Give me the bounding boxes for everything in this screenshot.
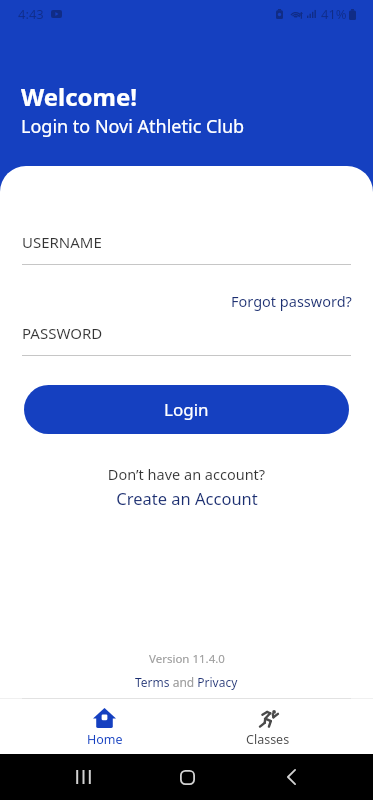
button[interactable]: Create an Account <box>116 487 258 509</box>
staticText: PASSWORD <box>22 323 103 343</box>
staticText: 4:43 <box>18 5 44 23</box>
staticText: Login <box>164 398 209 421</box>
staticText: 41% <box>321 5 347 23</box>
staticText: Welcome! <box>21 80 138 113</box>
button[interactable]: Recent apps <box>60 755 104 799</box>
staticText: Forgot password? <box>231 291 352 311</box>
staticText: Don’t have an account? <box>0 464 373 484</box>
button[interactable]: USERNAME <box>22 232 351 265</box>
button[interactable]: Home <box>23 699 186 754</box>
staticText: Version 11.4.0 <box>149 651 225 667</box>
button[interactable]: Login <box>24 385 349 434</box>
button[interactable]: Home <box>165 755 209 799</box>
button[interactable]: Classes <box>186 699 350 754</box>
staticText: Classes <box>246 731 290 748</box>
button[interactable]: Back <box>269 755 313 799</box>
button[interactable]: PASSWORD <box>22 323 351 356</box>
button[interactable]: Forgot password? <box>231 291 352 311</box>
button[interactable]: Terms and Privacy <box>135 674 238 690</box>
staticText: Login to Novi Athletic Club <box>21 114 245 139</box>
staticText: USERNAME <box>22 232 102 252</box>
staticText: Home <box>87 731 123 748</box>
